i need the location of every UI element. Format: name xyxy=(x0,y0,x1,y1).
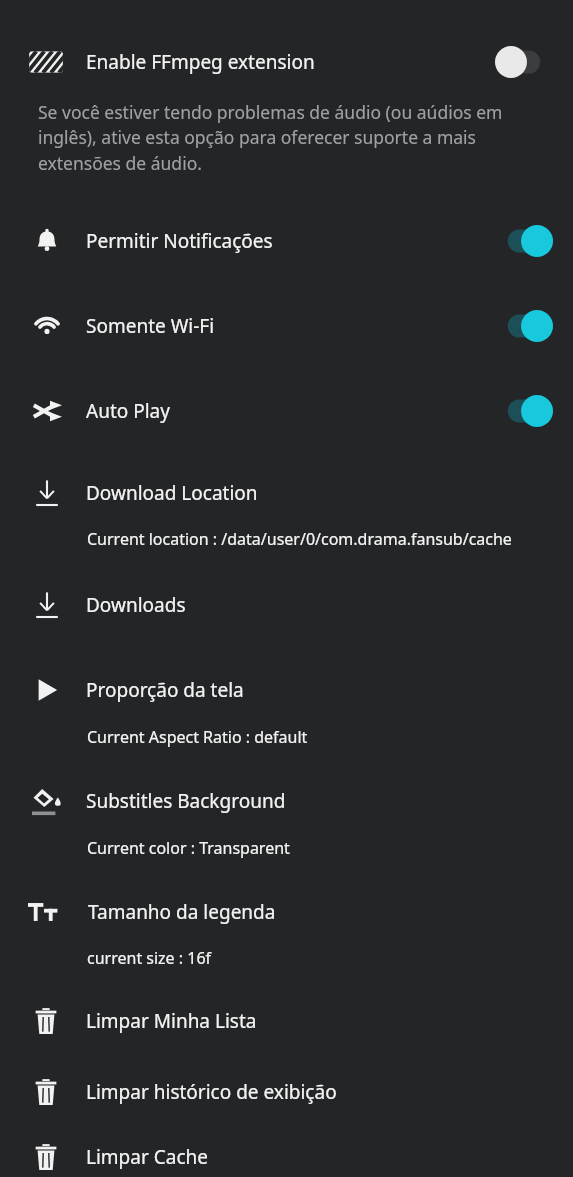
staticText: Somente Wi-Fi xyxy=(86,313,495,339)
button[interactable]: Downloads xyxy=(0,578,573,632)
staticText: Se você estiver tendo problemas de áudio… xyxy=(38,100,557,176)
button[interactable]: Permitir Notificações xyxy=(495,224,553,258)
button[interactable]: Auto Play xyxy=(0,382,573,440)
button[interactable]: Tamanho da legenda xyxy=(0,885,573,939)
staticText: Downloads xyxy=(86,592,553,618)
staticText: current size : 16f xyxy=(87,947,212,969)
staticText: Current Aspect Ratio : default xyxy=(87,726,308,748)
button[interactable]: Limpar Cache xyxy=(0,1136,573,1177)
button[interactable]: Enable FFmpeg extension xyxy=(495,45,553,79)
staticText: Current color : Transparent xyxy=(87,837,290,859)
staticText: Tamanho da legenda xyxy=(88,899,553,925)
staticText: Limpar Minha Lista xyxy=(86,1008,553,1034)
staticText: Permitir Notificações xyxy=(86,228,495,254)
button[interactable]: Limpar Minha Lista xyxy=(0,994,573,1048)
staticText: Auto Play xyxy=(86,398,495,424)
button[interactable]: Limpar histórico de exibição xyxy=(0,1065,573,1119)
staticText: Proporção da tela xyxy=(86,677,553,703)
button[interactable]: Auto Play xyxy=(495,394,553,428)
staticText: Limpar histórico de exibição xyxy=(86,1079,553,1105)
button[interactable]: Download Location xyxy=(0,466,573,520)
button[interactable]: Permitir Notificações xyxy=(0,212,573,270)
button[interactable]: Substitles Background xyxy=(0,774,573,828)
staticText: Enable FFmpeg extension xyxy=(86,49,495,75)
staticText: Download Location xyxy=(86,480,553,506)
staticText: Limpar Cache xyxy=(86,1144,553,1170)
button[interactable]: Enable FFmpeg extension xyxy=(0,32,573,92)
staticText: Substitles Background xyxy=(86,788,553,814)
staticText: Current location : /data/user/0/com.dram… xyxy=(87,528,512,550)
button[interactable]: Somente Wi-Fi xyxy=(0,297,573,355)
button[interactable]: Proporção da tela xyxy=(0,663,573,717)
button[interactable]: Somente Wi-Fi xyxy=(495,309,553,343)
